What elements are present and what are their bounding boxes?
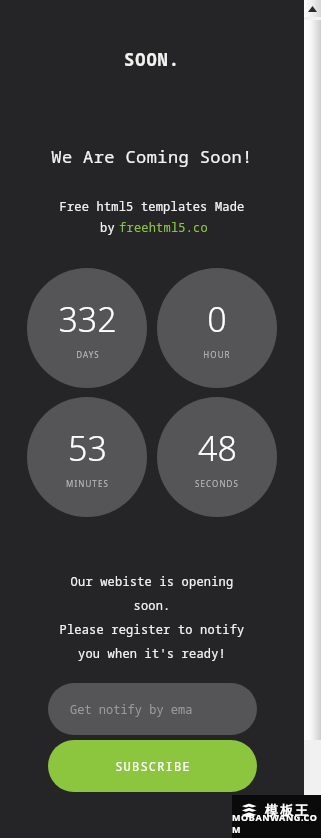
staticText: Our webiste is opening soon. Please regi… [0, 573, 304, 661]
staticText: 模板王 [264, 802, 309, 818]
staticText: We Are Coming Soon! [0, 145, 304, 168]
staticText: DAYS [76, 349, 100, 360]
staticText: by [96, 219, 119, 235]
button[interactable]: SUBSCRIBE [48, 740, 257, 792]
staticText: Get notify by ema [70, 701, 193, 717]
staticText: SECONDS [195, 478, 239, 489]
staticText: 48 [198, 425, 237, 471]
button[interactable]: 48 [157, 397, 277, 517]
button[interactable]: Get notify by ema [48, 683, 257, 735]
button[interactable]: 53 [27, 397, 147, 517]
button[interactable]: SOON. [124, 48, 180, 71]
staticText: 332 [58, 296, 117, 342]
button[interactable]: mobanwang.com watermark [232, 795, 321, 838]
button[interactable]: 0 [157, 268, 277, 388]
staticText: SUBSCRIBE [115, 758, 191, 774]
button[interactable]: Scroll up [304, 0, 321, 17]
staticText: 0 [207, 296, 227, 342]
button[interactable]: 332 [27, 268, 147, 388]
button[interactable]: freehtml5.co [119, 219, 208, 235]
button[interactable]: Scroll position [304, 20, 321, 740]
staticText: Free html5 templates Made [0, 198, 304, 214]
staticText: MOBANWANG.COM [232, 811, 321, 835]
staticText: 53 [68, 425, 107, 471]
staticText: HOUR [203, 349, 231, 360]
staticText: MINUTES [66, 478, 109, 489]
